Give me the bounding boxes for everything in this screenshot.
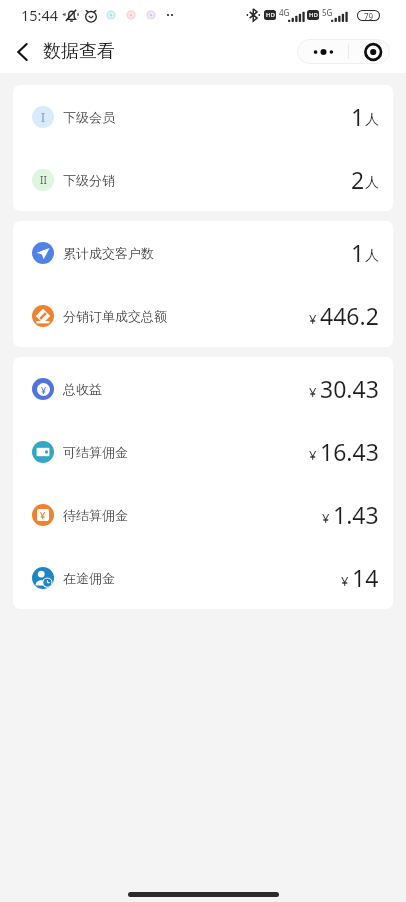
staticText: HD bbox=[309, 11, 318, 19]
button[interactable]: ¥ bbox=[13, 357, 393, 420]
staticText: 16.43 bbox=[320, 436, 379, 467]
button[interactable]: 分销订单成交总额 bbox=[13, 284, 393, 347]
staticText: ¥ bbox=[41, 384, 47, 396]
button[interactable]: Close bbox=[349, 39, 390, 64]
staticText: ¥ bbox=[40, 509, 46, 521]
staticText: 人 bbox=[365, 247, 379, 265]
staticText: 可结算佣金 bbox=[63, 444, 128, 460]
button[interactable]: I bbox=[13, 85, 393, 148]
staticText: 累计成交客户数 bbox=[63, 245, 154, 261]
staticText: 数据查看 bbox=[43, 40, 115, 63]
staticText: 30.43 bbox=[320, 373, 379, 404]
staticText: 人 bbox=[365, 111, 379, 129]
button[interactable]: More bbox=[297, 39, 348, 64]
staticText: 15:44 bbox=[21, 5, 59, 25]
button[interactable]: 在途佣金 bbox=[13, 546, 393, 609]
staticText: 14 bbox=[352, 562, 379, 593]
staticText: 1.43 bbox=[333, 499, 379, 530]
staticText: 下级会员 bbox=[63, 109, 115, 125]
staticText: 2 bbox=[351, 164, 365, 195]
staticText: ¥ bbox=[341, 572, 349, 590]
button[interactable]: 累计成交客户数 bbox=[13, 221, 393, 284]
staticText: 4G bbox=[279, 7, 290, 18]
staticText: 5G bbox=[322, 7, 333, 18]
staticText: 下级分销 bbox=[63, 172, 115, 188]
staticText: 分销订单成交总额 bbox=[63, 308, 167, 324]
staticText: 79 bbox=[364, 11, 374, 20]
staticText: I bbox=[41, 109, 46, 125]
staticText: HD bbox=[266, 11, 275, 19]
staticText: II bbox=[40, 173, 47, 187]
staticText: 在途佣金 bbox=[63, 570, 115, 586]
button[interactable]: II bbox=[13, 148, 393, 211]
staticText: 446.2 bbox=[320, 300, 379, 331]
staticText: ¥ bbox=[322, 509, 330, 527]
staticText: 人 bbox=[365, 174, 379, 192]
staticText: 总收益 bbox=[63, 381, 102, 397]
button[interactable]: 可结算佣金 bbox=[13, 420, 393, 483]
staticText: ¥ bbox=[309, 310, 317, 328]
staticText: 1 bbox=[351, 101, 365, 132]
button[interactable]: Back bbox=[7, 37, 36, 66]
staticText: ¥ bbox=[309, 383, 317, 401]
staticText: ¥ bbox=[309, 446, 317, 464]
staticText: 待结算佣金 bbox=[63, 507, 128, 523]
button[interactable]: ¥ bbox=[13, 483, 393, 546]
staticText: 1 bbox=[351, 237, 365, 268]
